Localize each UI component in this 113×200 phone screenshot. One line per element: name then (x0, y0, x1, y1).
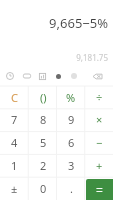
button[interactable]: Calculator (18, 66, 36, 86)
button[interactable]: 8 (29, 108, 57, 131)
button[interactable]: More (65, 66, 83, 86)
button[interactable]: History (1, 66, 19, 86)
staticText: % (66, 90, 76, 105)
staticText: + (96, 158, 103, 173)
staticText: C (11, 90, 18, 105)
button[interactable]: Backspace (88, 66, 106, 86)
staticText: 1 (11, 158, 18, 173)
staticText: 9 (68, 112, 75, 127)
staticText: 9,665−5% (0, 14, 108, 32)
staticText: 9,181.75 (0, 52, 108, 63)
button[interactable]: + (85, 154, 113, 177)
button[interactable]: Units (49, 66, 67, 86)
button[interactable]: ÷ (85, 86, 113, 108)
button[interactable]: 7 (0, 108, 29, 131)
staticText: 5 (40, 135, 47, 150)
staticText: ÷ (96, 90, 103, 105)
button[interactable]: 1 (0, 154, 29, 177)
button[interactable]: 9 (57, 108, 85, 131)
staticText: 7 (11, 112, 18, 127)
button[interactable]: C (0, 86, 29, 108)
button[interactable]: () (29, 86, 57, 108)
button[interactable]: 4 (0, 131, 29, 154)
button[interactable]: − (85, 131, 113, 154)
staticText: () (40, 90, 47, 105)
button[interactable]: 6 (57, 131, 85, 154)
button[interactable]: 0 (29, 177, 57, 200)
staticText: 3 (68, 158, 75, 173)
staticText: . (70, 181, 73, 196)
staticText: × (96, 112, 103, 127)
staticText: 6 (68, 135, 75, 150)
button[interactable]: 5 (29, 131, 57, 154)
button[interactable]: 3 (57, 154, 85, 177)
staticText: 0 (40, 181, 47, 196)
button[interactable]: % (57, 86, 85, 108)
button[interactable]: 2 (29, 154, 57, 177)
staticText: − (96, 135, 103, 150)
staticText: 8 (40, 112, 47, 127)
button[interactable]: = (86, 179, 113, 200)
staticText: 2 (40, 158, 47, 173)
staticText: = (96, 182, 103, 198)
button[interactable]: ± (0, 177, 29, 200)
button[interactable]: . (57, 177, 85, 200)
button[interactable]: × (85, 108, 113, 131)
staticText: ± (11, 181, 18, 196)
button[interactable]: Converter (33, 66, 51, 86)
staticText: 4 (11, 135, 18, 150)
